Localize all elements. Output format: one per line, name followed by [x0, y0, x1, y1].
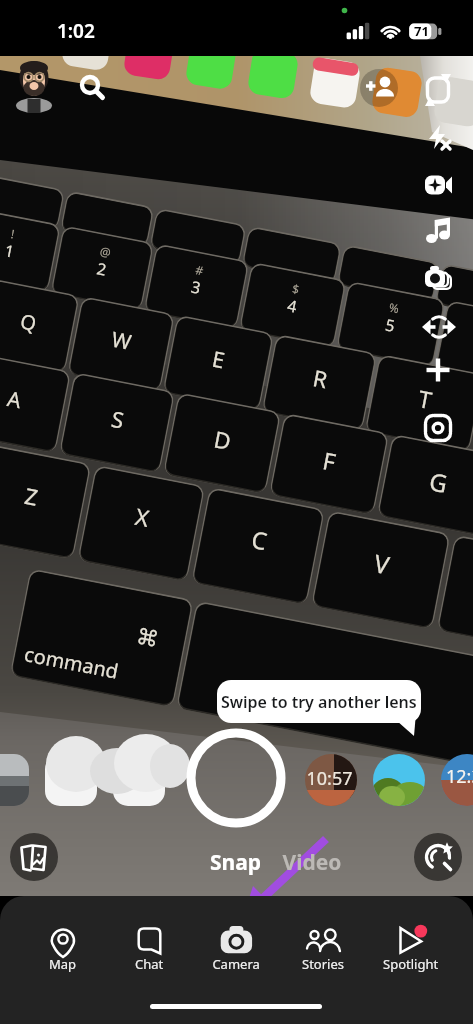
button[interactable]: Search [68, 63, 112, 107]
button[interactable]: Switch camera [416, 68, 460, 112]
button[interactable]: Flash off [416, 115, 460, 159]
button[interactable]: Chat [106, 905, 193, 979]
button[interactable]: Map [20, 905, 107, 979]
button[interactable]: Sounds [416, 210, 460, 254]
button[interactable]: Flip camera [416, 305, 460, 349]
button[interactable]: Profile [10, 62, 58, 110]
button[interactable]: Take a snap [186, 728, 286, 828]
button[interactable]: Multi snap [416, 256, 460, 300]
button[interactable]: Video [278, 846, 346, 878]
button[interactable]: Add a lens [416, 348, 460, 392]
button[interactable]: Lens 4 [305, 754, 357, 806]
button[interactable]: Add friends [358, 66, 402, 110]
button[interactable]: Lens 1 [0, 754, 29, 806]
button[interactable]: Spotlight [367, 905, 454, 979]
button[interactable]: Camera [193, 905, 280, 979]
button[interactable]: Lens 6 [441, 754, 473, 806]
button[interactable]: Stories [280, 905, 367, 979]
button[interactable]: Scan [416, 406, 460, 450]
button[interactable]: Lens 2 [45, 754, 97, 806]
button[interactable]: Explore lenses [414, 833, 462, 881]
button[interactable]: Lens 3 [113, 754, 165, 806]
button[interactable]: Snap [202, 846, 270, 878]
button[interactable]: Memories [10, 833, 58, 881]
button[interactable]: Create a video [416, 163, 460, 207]
button[interactable]: Lens 5 [373, 754, 425, 806]
